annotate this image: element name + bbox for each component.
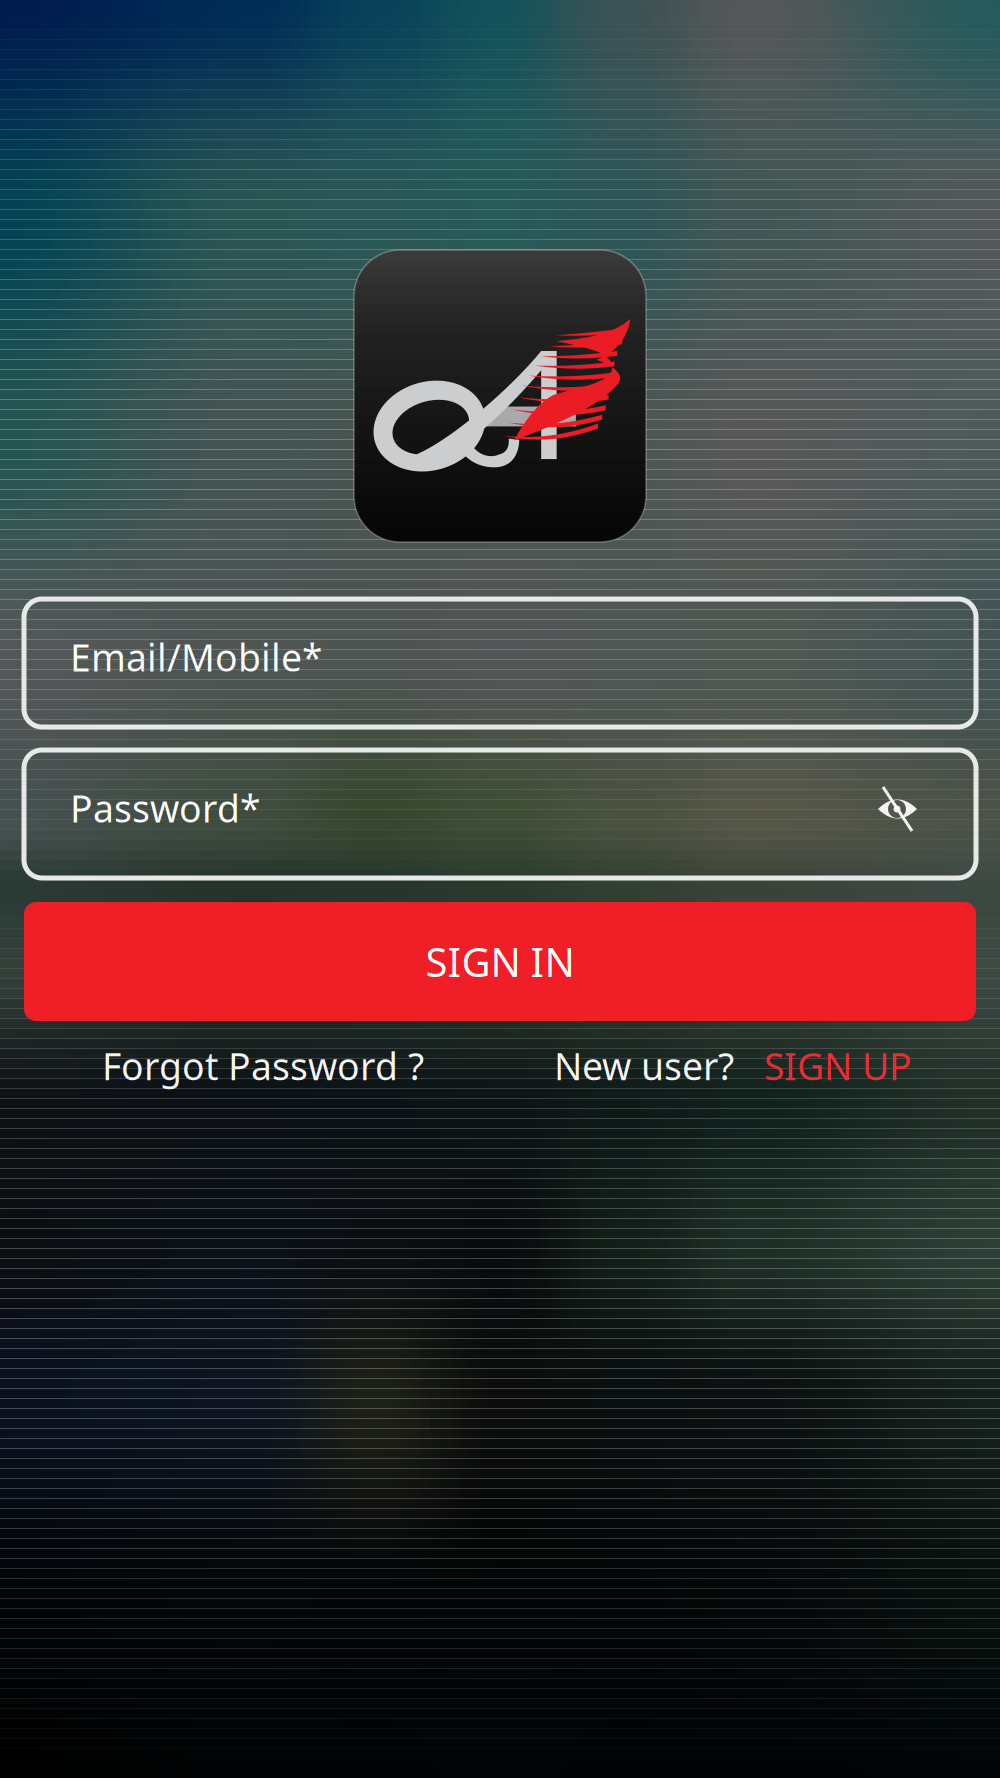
button[interactable]: Forgot Password ? — [102, 1041, 424, 1091]
staticText: SIGN UP — [764, 1041, 912, 1091]
staticText: New user? — [554, 1041, 734, 1091]
staticText: SIGN IN — [425, 935, 574, 988]
button[interactable]: SIGN IN — [24, 902, 976, 1021]
button[interactable]: SIGN UP — [764, 1041, 912, 1091]
staticText: Email/Mobile* — [70, 632, 323, 682]
button[interactable]: Show password — [878, 787, 918, 831]
staticText: Forgot Password ? — [102, 1041, 424, 1091]
staticText: Password* — [70, 783, 261, 833]
